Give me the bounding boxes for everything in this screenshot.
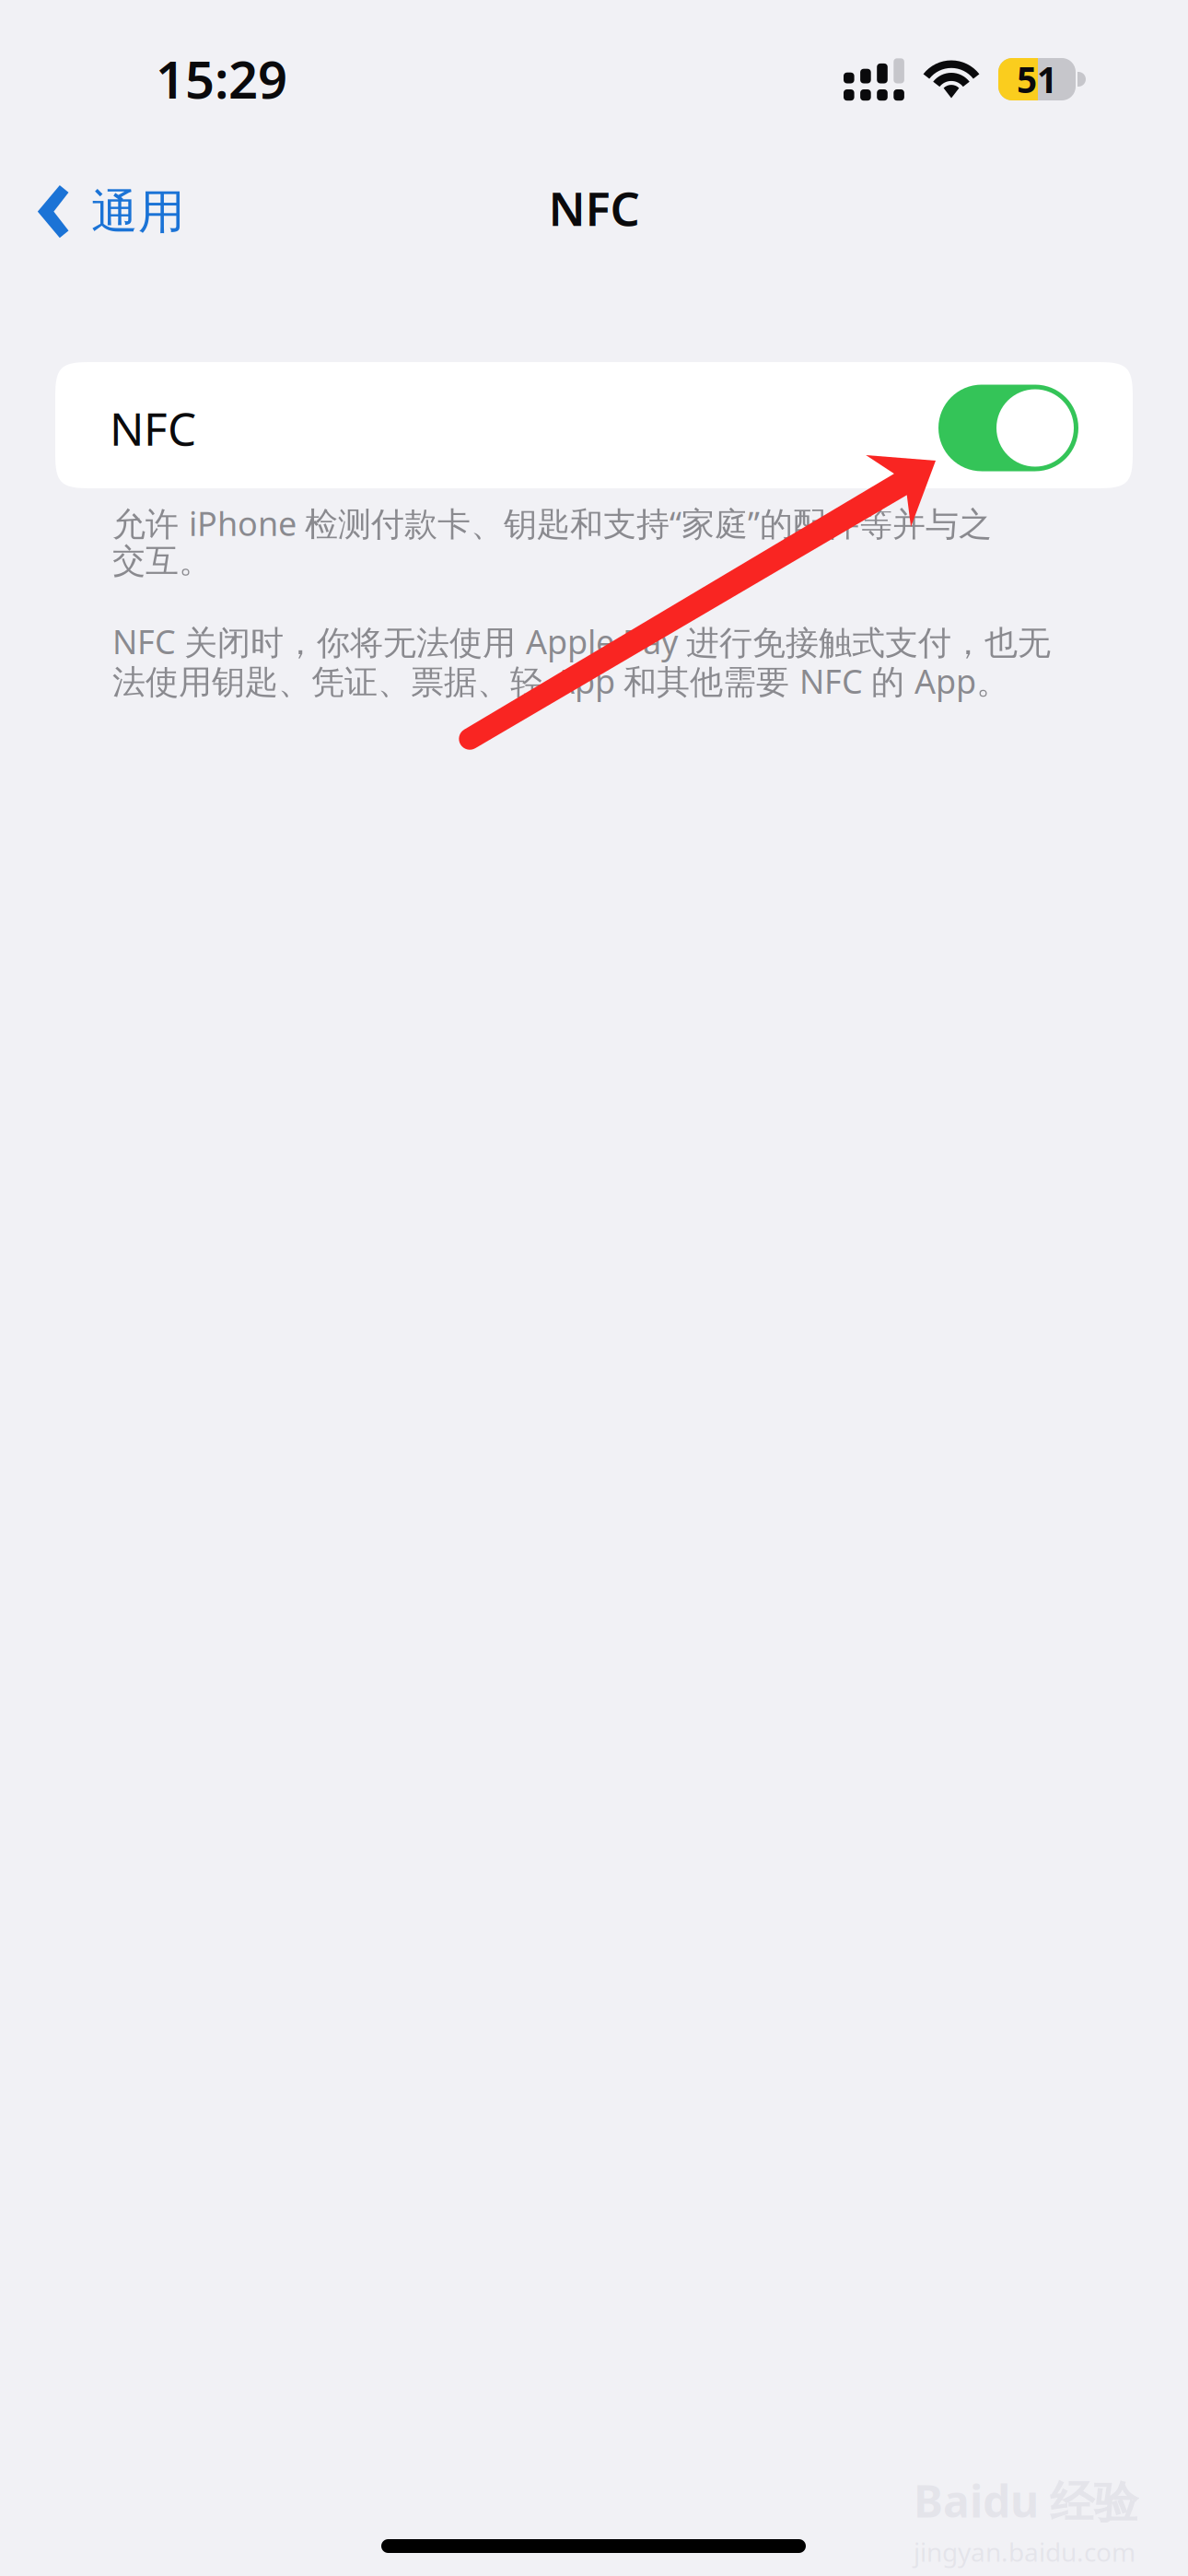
staticText: 允许 iPhone 检测付款卡、钥匙和支持“家庭”的配件等并与之交互。 [112,501,992,581]
staticText: NFC 关闭时，你将无法使用 Apple Pay 进行免接触式支付，也无法使用钥… [112,619,1051,703]
staticText: jingyan.baidu.com [914,2535,1136,2569]
button[interactable]: NFC, on [938,385,1078,471]
staticText: NFC [548,177,640,239]
staticText: 通用 [91,183,185,241]
staticText: NFC [110,398,196,458]
staticText: Baidu 经验 [914,2471,1138,2530]
staticText: 15:29 [156,44,287,113]
button[interactable]: NFC [55,362,1133,488]
button[interactable]: 通用 [0,167,209,257]
staticText: 51 [1017,56,1057,103]
